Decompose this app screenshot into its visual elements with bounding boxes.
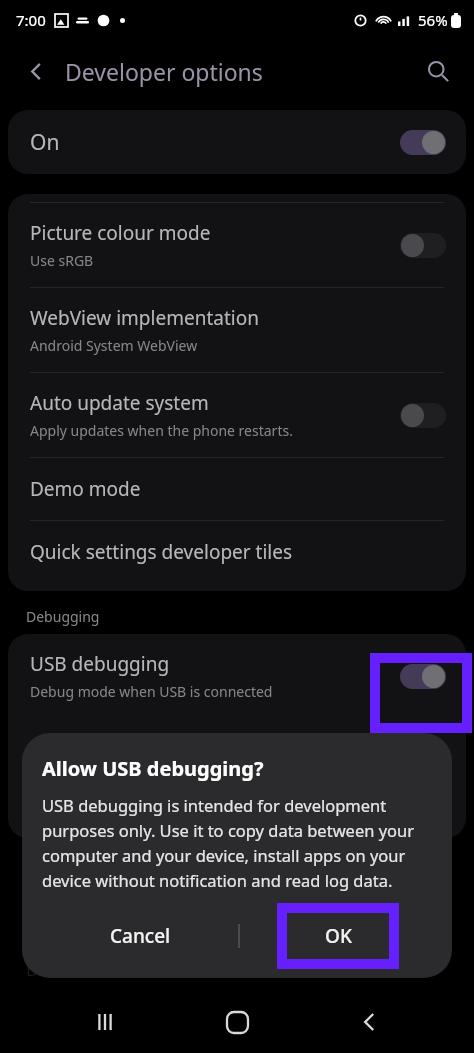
button[interactable]: Home xyxy=(209,994,265,1050)
button[interactable]: Recents xyxy=(77,994,133,1050)
staticText: Auto update system xyxy=(30,390,209,416)
staticText: Cancel xyxy=(110,923,171,949)
button[interactable]: Cancel xyxy=(42,904,238,968)
button[interactable]: Demo mode xyxy=(8,458,466,520)
staticText: WebView implementation xyxy=(30,305,259,331)
staticText: On xyxy=(30,128,60,157)
staticText: Picture colour mode xyxy=(30,220,211,246)
button[interactable]: USB debugging xyxy=(8,634,466,718)
button[interactable]: Picture colour mode xyxy=(8,203,466,287)
staticText: Debug mode when USB is connected xyxy=(30,682,273,701)
staticText: 56% xyxy=(418,10,448,30)
button[interactable]: Quick settings developer tiles xyxy=(8,521,466,583)
staticText: Use sRGB xyxy=(30,251,94,270)
staticText: 7:00 xyxy=(16,10,46,30)
staticText: Allow USB debugging? xyxy=(42,755,264,782)
staticText: Developer options xyxy=(65,56,263,87)
button[interactable]: Search xyxy=(414,47,462,95)
button[interactable]: Auto update system xyxy=(8,373,466,457)
button[interactable]: Back xyxy=(342,994,398,1050)
staticText: USB debugging xyxy=(30,651,170,677)
staticText: USB debugging is intended for developmen… xyxy=(42,794,436,892)
button[interactable]: Switch on xyxy=(400,664,446,689)
button[interactable]: WebView implementation xyxy=(8,288,466,372)
button[interactable]: Switch off xyxy=(400,233,446,258)
button[interactable]: On xyxy=(8,110,466,174)
staticText: Quick settings developer tiles xyxy=(30,539,293,565)
staticText: Debugging xyxy=(26,607,100,626)
staticText: Demo mode xyxy=(30,476,141,502)
staticText: OK xyxy=(325,923,352,949)
staticText: Apply updates when the phone restarts. xyxy=(30,421,293,440)
button[interactable]: Back xyxy=(12,47,60,95)
staticText: Android System WebView xyxy=(30,336,198,355)
staticText: Disable adb authorization timeout xyxy=(26,958,299,981)
button[interactable]: Switch off xyxy=(400,403,446,428)
button[interactable]: Switch on xyxy=(400,130,446,155)
button[interactable]: OK xyxy=(282,908,394,964)
